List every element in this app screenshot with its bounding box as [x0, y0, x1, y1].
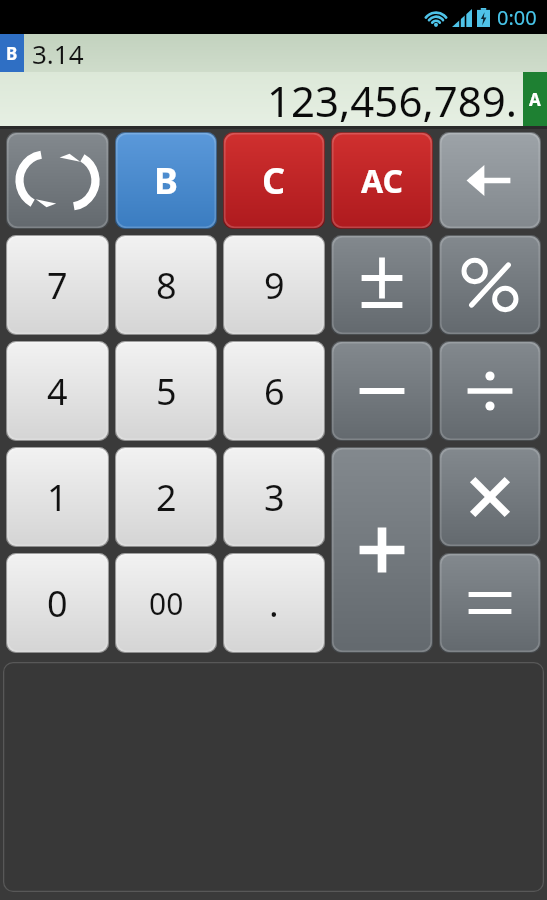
button[interactable]: AC — [331, 132, 433, 229]
staticText: . — [269, 579, 279, 628]
button[interactable]: Backspace — [439, 132, 541, 229]
button[interactable]: 9 — [223, 235, 325, 335]
button[interactable]: Minus — [331, 341, 433, 441]
staticText: 8 — [156, 261, 177, 310]
staticText: C — [262, 156, 286, 205]
button[interactable]: Equals — [439, 553, 541, 653]
staticText: 7 — [47, 261, 68, 310]
button[interactable]: 1 — [6, 447, 109, 547]
button[interactable]: Plus — [331, 447, 433, 653]
button[interactable]: 6 — [223, 341, 325, 441]
staticText: 123,456,789. — [267, 72, 517, 126]
button[interactable]: Percent — [439, 235, 541, 335]
staticText: 6 — [264, 367, 285, 416]
button[interactable]: Swap A and B — [6, 132, 109, 229]
staticText: AC — [361, 159, 404, 203]
button[interactable] — [3, 662, 544, 892]
button[interactable]: 4 — [6, 341, 109, 441]
staticText: 4 — [47, 367, 68, 416]
button[interactable]: B — [115, 132, 217, 229]
staticText: 3.14 — [32, 36, 84, 71]
button[interactable]: 5 — [115, 341, 217, 441]
button[interactable]: Plus minus — [331, 235, 433, 335]
button[interactable]: Divide — [439, 341, 541, 441]
button[interactable]: 2 — [115, 447, 217, 547]
staticText: 2 — [156, 473, 177, 522]
button[interactable]: 0 — [6, 553, 109, 653]
button[interactable]: 7 — [6, 235, 109, 335]
staticText: 00 — [149, 583, 184, 624]
button[interactable]: 00 — [115, 553, 217, 653]
staticText: A — [529, 88, 541, 111]
button[interactable]: C — [223, 132, 325, 229]
button[interactable]: 8 — [115, 235, 217, 335]
staticText: 0 — [47, 579, 68, 628]
staticText: B — [154, 156, 178, 205]
staticText: 9 — [264, 261, 285, 310]
button[interactable]: . — [223, 553, 325, 653]
staticText: 1 — [47, 473, 68, 522]
button[interactable]: 3 — [223, 447, 325, 547]
staticText: 3 — [264, 473, 285, 522]
staticText: 0:00 — [497, 4, 537, 31]
staticText: 5 — [156, 367, 177, 416]
staticText: B — [6, 42, 18, 65]
button[interactable]: Multiply — [439, 447, 541, 547]
